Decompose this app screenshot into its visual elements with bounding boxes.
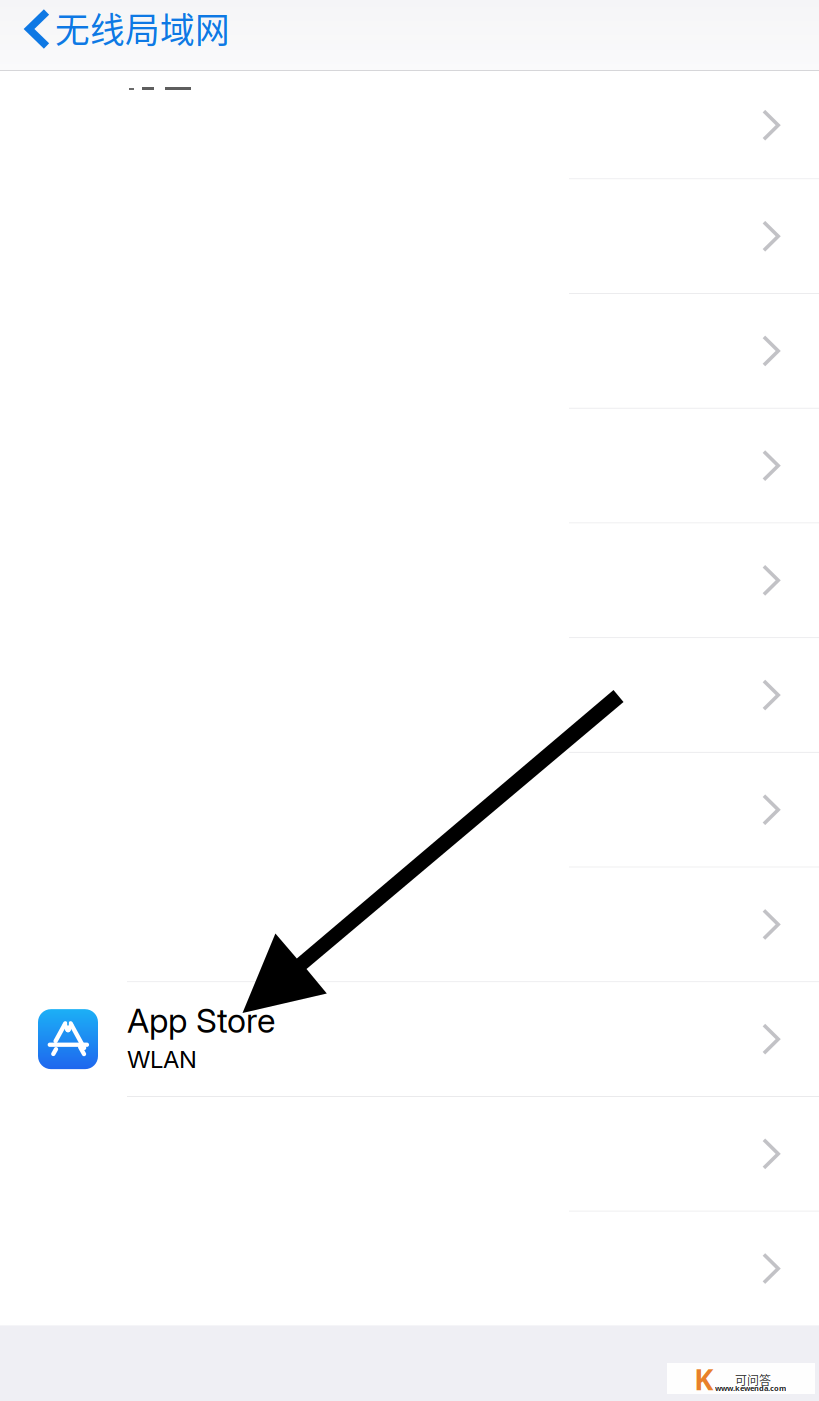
button[interactable]: App (0, 637, 819, 752)
staticText: WLAN (127, 1045, 197, 1074)
staticText: 可问答 (735, 1371, 771, 1388)
staticText: 无线局域网 (55, 3, 230, 53)
button[interactable]: App Store (0, 981, 819, 1096)
staticText: www.kewenda.com (715, 1383, 786, 1393)
button[interactable]: App (0, 752, 819, 867)
button[interactable]: App (0, 867, 819, 981)
button[interactable]: 返回 (0, 1, 819, 71)
button[interactable]: App (0, 71, 819, 178)
staticText: K (694, 1359, 713, 1399)
staticText: App Store (127, 1000, 275, 1041)
